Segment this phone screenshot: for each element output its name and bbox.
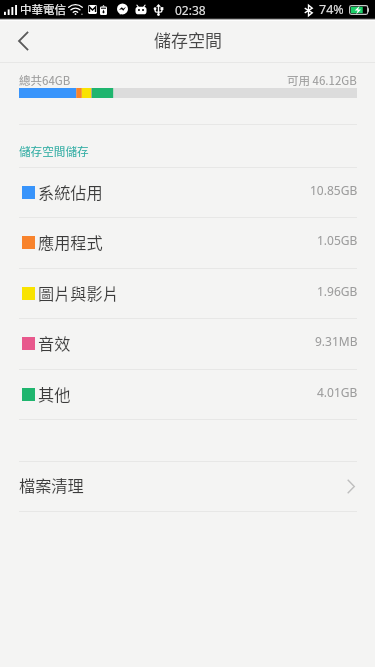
button[interactable]: 應用程式 xyxy=(0,217,375,268)
button[interactable]: Back xyxy=(0,22,47,62)
button[interactable]: 音效 xyxy=(0,318,375,369)
button[interactable]: 系統佔用 xyxy=(0,167,375,218)
staticText: 1.96GB xyxy=(317,283,358,299)
staticText: 應用程式 xyxy=(38,230,103,253)
button[interactable]: 圖片與影片 xyxy=(0,268,375,319)
staticText: 9.31MB xyxy=(315,333,358,349)
staticText: 74% xyxy=(319,1,344,18)
button[interactable]: 其他 xyxy=(0,369,375,420)
staticText: 檔案清理 xyxy=(19,473,84,496)
staticText: 儲存空間 xyxy=(154,27,222,52)
staticText: 其他 xyxy=(38,382,71,405)
staticText: 4.01GB xyxy=(317,384,358,400)
staticText: 儲存空間儲存 xyxy=(19,143,89,160)
staticText: 1.05GB xyxy=(317,232,358,248)
button[interactable]: 檔案清理 xyxy=(0,461,375,511)
staticText: 總共64GB xyxy=(19,72,71,89)
staticText: 系統佔用 xyxy=(38,180,103,203)
staticText: 音效 xyxy=(38,331,71,354)
staticText: 可用 46.12GB xyxy=(287,72,357,89)
staticText: 中華電信 xyxy=(20,1,66,18)
staticText: 圖片與影片 xyxy=(38,281,119,304)
staticText: 02:38 xyxy=(175,2,206,18)
staticText: 10.85GB xyxy=(310,182,358,198)
